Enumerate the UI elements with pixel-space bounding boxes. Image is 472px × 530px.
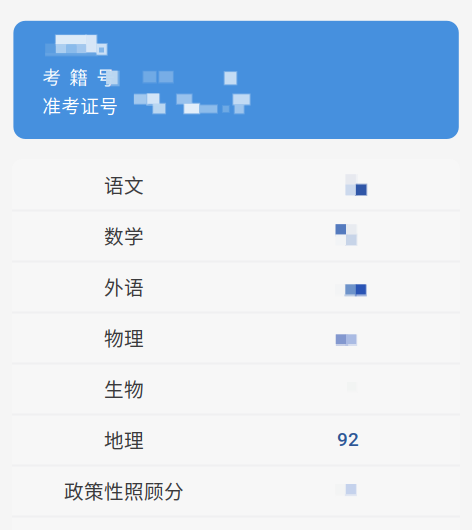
staticText: 数学 bbox=[104, 221, 144, 250]
button[interactable]: 物理 bbox=[0, 0, 460, 363]
staticText: 政策性照顾分 bbox=[64, 476, 184, 505]
button[interactable]: 政策性照顾分 bbox=[0, 0, 460, 516]
button[interactable]: 地理 bbox=[0, 0, 460, 465]
button[interactable] bbox=[0, 0, 460, 530]
button[interactable]: 数学 bbox=[0, 0, 460, 261]
staticText: 生物 bbox=[104, 374, 144, 403]
staticText: 考 籍 号 bbox=[42, 63, 115, 90]
button[interactable]: 生物 bbox=[0, 0, 460, 414]
staticText: 语文 bbox=[104, 170, 144, 199]
staticText: 外语 bbox=[104, 272, 144, 301]
button[interactable]: 外语 bbox=[0, 0, 460, 312]
staticText: 92 bbox=[337, 428, 359, 451]
staticText: 准考证号 bbox=[42, 91, 118, 118]
button[interactable]: 语文 bbox=[0, 0, 460, 210]
staticText: 物理 bbox=[104, 323, 144, 352]
staticText: 地理 bbox=[104, 425, 144, 454]
